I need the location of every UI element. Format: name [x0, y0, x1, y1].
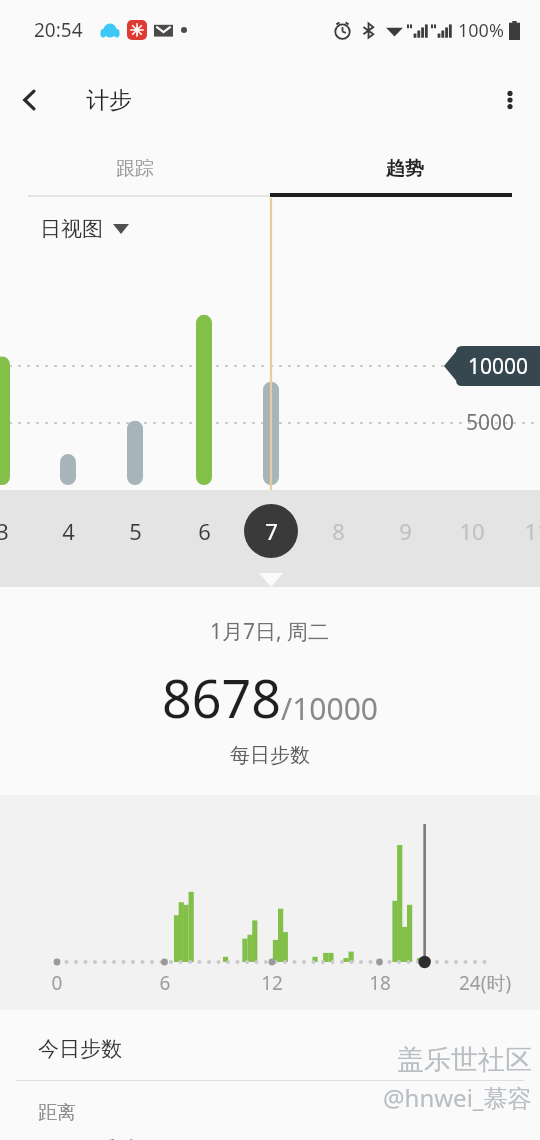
- staticText: 7: [265, 516, 278, 546]
- staticText: @hnwei_慕容: [383, 1081, 532, 1114]
- button[interactable]: 6: [177, 504, 231, 558]
- staticText: 4: [62, 516, 75, 546]
- staticText: /10000: [281, 688, 378, 729]
- button[interactable]: 11: [510, 504, 540, 558]
- staticText: 8: [332, 516, 345, 546]
- staticText: 11: [524, 516, 540, 546]
- staticText: 1月7日, 周二: [210, 617, 330, 646]
- staticText: 5: [129, 516, 142, 546]
- button[interactable]: 5: [108, 504, 162, 558]
- button[interactable]: More options: [480, 70, 540, 130]
- button[interactable]: 4: [41, 504, 95, 558]
- staticText: 20:54: [34, 17, 83, 43]
- staticText: 12: [260, 970, 284, 996]
- staticText: 100%: [458, 18, 504, 43]
- button[interactable]: 9: [378, 504, 432, 558]
- staticText: 10000: [468, 352, 529, 381]
- button[interactable]: 跟踪: [0, 140, 270, 198]
- button[interactable]: 趋势: [270, 140, 540, 198]
- staticText: 今日步数: [38, 1036, 122, 1062]
- staticText: 每日步数: [230, 743, 310, 768]
- button[interactable]: 距离: [0, 1101, 540, 1140]
- staticText: 8678: [162, 662, 281, 733]
- button[interactable]: 8: [311, 504, 365, 558]
- button[interactable]: 7: [244, 504, 298, 558]
- staticText: 日视图: [40, 216, 103, 242]
- button[interactable]: 10: [445, 504, 499, 558]
- staticText: 趋势: [386, 157, 424, 181]
- staticText: 6: [153, 970, 177, 996]
- staticText: 0: [45, 970, 69, 996]
- staticText: 18: [368, 970, 392, 996]
- staticText: 9: [399, 516, 412, 546]
- button[interactable]: Back: [0, 70, 60, 130]
- staticText: 距离: [38, 1101, 76, 1125]
- staticText: 5000: [466, 408, 515, 437]
- staticText: 跟踪: [116, 157, 154, 181]
- staticText: 10: [459, 516, 485, 546]
- button[interactable]: 3: [0, 504, 29, 558]
- button[interactable]: 日视图: [40, 216, 129, 242]
- staticText: 计步: [86, 86, 132, 115]
- staticText: 24(时): [459, 970, 512, 996]
- staticText: 6.38 千米: [38, 1133, 145, 1140]
- staticText: 6: [198, 516, 211, 546]
- staticText: 3: [0, 516, 9, 546]
- staticText: 盖乐世社区: [397, 1043, 532, 1077]
